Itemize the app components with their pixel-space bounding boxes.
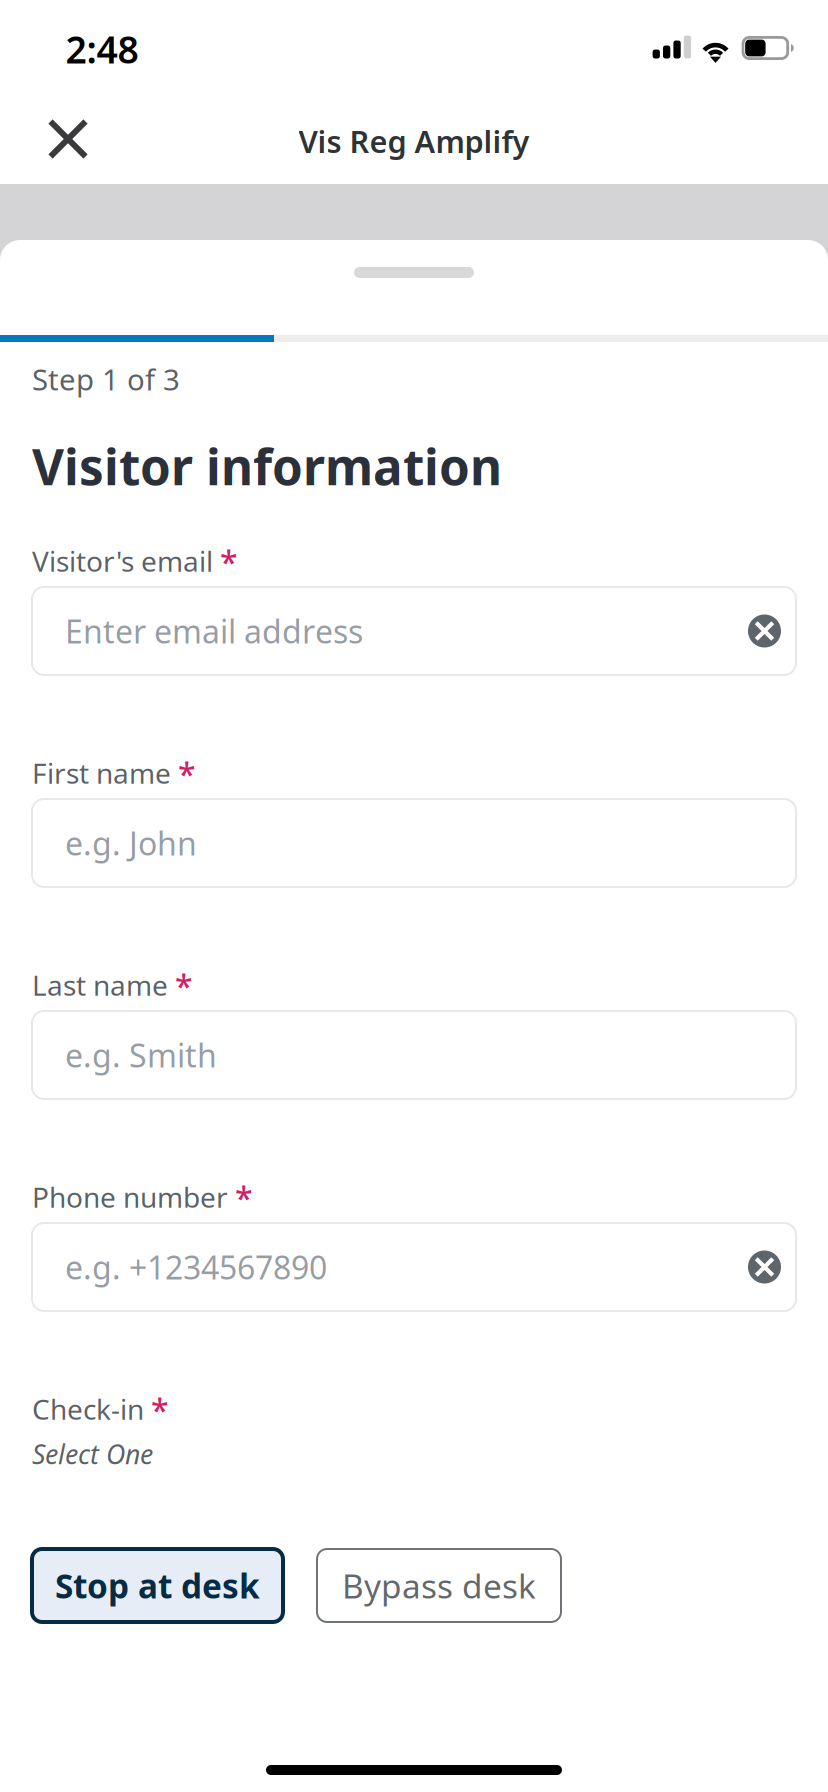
staticText: Vis Reg Amplify bbox=[298, 121, 529, 161]
button[interactable]: e.g. John bbox=[32, 799, 796, 887]
staticText: Visitor information bbox=[32, 433, 502, 499]
button[interactable]: Enter email address bbox=[32, 587, 796, 675]
staticText: e.g. John bbox=[65, 822, 197, 864]
staticText: Step 1 of 3 bbox=[32, 359, 180, 398]
staticText: Enter email address bbox=[65, 610, 363, 652]
staticText: e.g. Smith bbox=[65, 1034, 217, 1076]
staticText: * bbox=[220, 541, 238, 583]
staticText: Phone number bbox=[32, 1178, 228, 1216]
button[interactable]: Bypass desk bbox=[317, 1549, 561, 1622]
staticText: Select One bbox=[32, 1436, 153, 1472]
staticText: First name bbox=[32, 754, 171, 792]
staticText: * bbox=[151, 1389, 169, 1431]
button[interactable]: e.g. Smith bbox=[32, 1011, 796, 1099]
staticText: * bbox=[175, 965, 193, 1007]
staticText: Last name bbox=[32, 966, 168, 1004]
staticText: * bbox=[178, 753, 196, 795]
staticText: Check-in bbox=[32, 1390, 144, 1428]
button[interactable]: Stop at desk bbox=[32, 1549, 283, 1622]
staticText: e.g. +1234567890 bbox=[65, 1246, 327, 1288]
staticText: 2:48 bbox=[65, 24, 138, 74]
staticText: Stop at desk bbox=[55, 1563, 260, 1608]
button[interactable]: Close bbox=[28, 99, 108, 179]
button[interactable]: e.g. +1234567890 bbox=[32, 1223, 796, 1311]
staticText: Bypass desk bbox=[342, 1563, 536, 1608]
staticText: Visitor's email bbox=[32, 542, 213, 580]
staticText: * bbox=[235, 1177, 253, 1219]
